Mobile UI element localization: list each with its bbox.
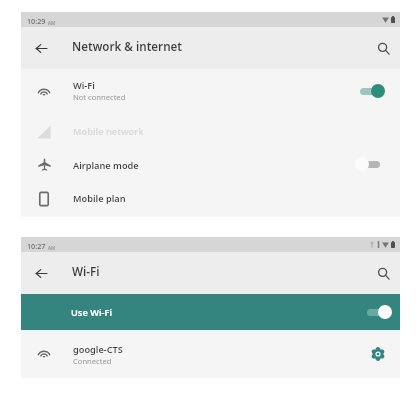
staticText: Not connected: [73, 92, 126, 102]
button[interactable]: Back: [32, 264, 50, 282]
button[interactable]: Airplane mode toggle, off: [355, 157, 380, 171]
staticText: Wi-Fi: [73, 79, 95, 92]
button[interactable]: Search: [374, 39, 392, 57]
button[interactable]: Wi-Fi: [21, 69, 400, 111]
staticText: AM: [48, 245, 56, 251]
staticText: 10:27: [27, 241, 46, 251]
staticText: google-CTS: [73, 343, 123, 356]
staticText: Airplane mode: [73, 159, 139, 172]
staticText: 10:29: [27, 16, 46, 26]
staticText: Network & internet: [72, 39, 183, 55]
button[interactable]: Search: [374, 264, 392, 282]
staticText: Mobile network: [73, 125, 144, 138]
button[interactable]: google-CTS: [21, 330, 400, 372]
button[interactable]: Network details: [371, 347, 385, 361]
staticText: Wi-Fi: [72, 264, 100, 280]
button[interactable]: Mobile network: [21, 111, 400, 145]
staticText: Use Wi-Fi: [71, 306, 367, 319]
staticText: AM: [48, 20, 56, 26]
staticText: Connected: [73, 356, 112, 366]
button[interactable]: Airplane mode: [21, 145, 400, 178]
button[interactable]: Back: [32, 39, 50, 57]
button[interactable]: Mobile plan: [21, 178, 400, 211]
button[interactable]: Use Wi-Fi: [21, 294, 400, 330]
button[interactable]: Use Wi-Fi toggle, on: [367, 305, 392, 319]
button[interactable]: Wi-Fi toggle, on: [360, 84, 385, 98]
staticText: Mobile plan: [73, 192, 126, 205]
